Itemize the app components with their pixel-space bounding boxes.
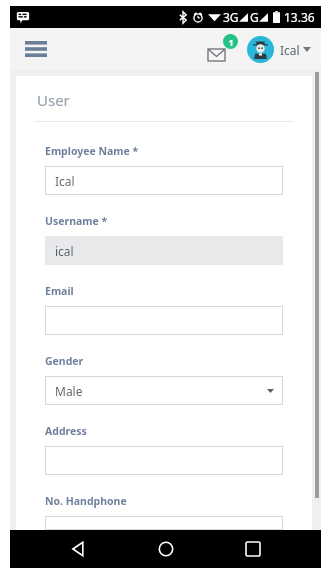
button[interactable]: Home bbox=[146, 530, 186, 568]
staticText: 3G bbox=[223, 9, 239, 25]
staticText: Address bbox=[45, 424, 87, 438]
staticText: Gender bbox=[45, 354, 84, 368]
staticText: Male bbox=[55, 383, 83, 399]
staticText: ical bbox=[55, 243, 74, 259]
staticText: 13.36 bbox=[284, 9, 315, 25]
button[interactable] bbox=[45, 446, 283, 475]
staticText: G bbox=[250, 9, 259, 25]
button[interactable]: Back bbox=[58, 530, 98, 568]
button[interactable]: Ical bbox=[45, 166, 283, 195]
staticText: Ical bbox=[280, 42, 300, 58]
staticText: Employee Name * bbox=[45, 144, 139, 158]
button[interactable]: Menu bbox=[18, 31, 54, 67]
button[interactable]: Recents bbox=[233, 530, 273, 568]
button[interactable] bbox=[45, 516, 283, 530]
button[interactable]: ical bbox=[45, 236, 283, 265]
button[interactable] bbox=[45, 306, 283, 335]
staticText: User bbox=[37, 90, 70, 110]
button[interactable]: Ical bbox=[247, 36, 311, 63]
button[interactable]: Male bbox=[45, 376, 283, 405]
staticText: Username * bbox=[45, 214, 108, 228]
staticText: 1 bbox=[228, 36, 234, 48]
staticText: Email bbox=[45, 284, 74, 298]
staticText: No. Handphone bbox=[45, 494, 127, 508]
button[interactable]: Messages bbox=[208, 34, 238, 64]
staticText: Ical bbox=[55, 173, 75, 189]
